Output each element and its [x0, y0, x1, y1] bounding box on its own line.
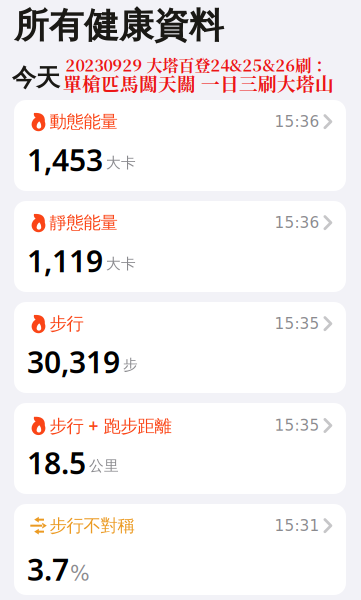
staticText: 所有健康資料 — [14, 4, 224, 47]
button[interactable]: 步行 + 跑步距離 — [14, 403, 346, 494]
staticText: 1,119 — [27, 240, 103, 281]
staticText: 步 — [123, 355, 138, 374]
staticText: 30,319 — [27, 341, 120, 382]
staticText: 靜態能量 — [49, 212, 117, 233]
staticText: 單槍匹馬闖天關 一日三刷大塔山 — [63, 69, 334, 96]
staticText: 15:36 — [274, 214, 319, 231]
button[interactable]: 動態能量 — [14, 100, 346, 191]
staticText: 大卡 — [106, 153, 136, 172]
staticText: % — [70, 561, 90, 585]
staticText: 15:36 — [274, 113, 319, 130]
staticText: 20230929 大塔百登24&25&26刷： — [65, 53, 327, 76]
staticText: 公里 — [89, 456, 119, 475]
staticText: 15:31 — [274, 517, 319, 534]
staticText: 3.7 — [27, 549, 69, 589]
button[interactable]: 步行不對稱 — [14, 504, 346, 595]
staticText: 步行不對稱 — [49, 515, 134, 536]
staticText: 1,453 — [27, 139, 103, 180]
staticText: 15:35 — [274, 417, 319, 434]
staticText: 步行 — [49, 313, 83, 334]
staticText: 15:35 — [274, 315, 319, 332]
staticText: 今天 — [12, 63, 60, 92]
staticText: 大卡 — [106, 254, 136, 273]
button[interactable]: 步行 — [14, 302, 346, 393]
button[interactable]: 靜態能量 — [14, 201, 346, 292]
staticText: 步行 + 跑步距離 — [49, 414, 171, 437]
staticText: 動態能量 — [49, 111, 117, 132]
staticText: 18.5 — [27, 442, 86, 483]
